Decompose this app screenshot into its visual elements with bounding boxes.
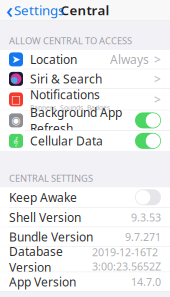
staticText: CENTRAL SETTINGS [9, 172, 93, 184]
staticText: Notifications [30, 87, 100, 103]
staticText: Settings [14, 1, 64, 19]
button[interactable]: ◉ [0, 110, 170, 130]
staticText: ◉ [11, 114, 20, 126]
staticText: > [154, 51, 161, 67]
staticText: > [154, 91, 161, 107]
button[interactable]: ➤ [0, 50, 170, 69]
staticText: 9.3.53 [131, 210, 161, 224]
staticText: Cellular Data [30, 133, 103, 149]
staticText: 𝄞 [13, 135, 18, 147]
staticText: Siri & Search [30, 71, 102, 87]
staticText: Banners, Sounds, Badges [30, 103, 110, 112]
staticText: 14.7.0 [131, 275, 161, 289]
staticText: ‹ [6, 0, 13, 24]
button[interactable]: 𝄞 [0, 131, 170, 151]
staticText: Central [60, 1, 109, 19]
staticText: App Version [9, 274, 76, 290]
button[interactable]: Siri & Search [0, 69, 170, 88]
button[interactable]: Keep Awake [0, 187, 170, 207]
staticText: 9.7.271 [125, 230, 161, 244]
staticText: Always [110, 51, 149, 67]
staticText: 2019-12-16T23:00:23.5652Z [92, 245, 161, 273]
staticText: Location [30, 51, 77, 67]
staticText: > [154, 71, 161, 87]
button[interactable]: □ [0, 89, 170, 110]
staticText: Keep Awake [9, 189, 77, 205]
staticText: Background App Refresh [30, 104, 122, 136]
button[interactable]: ‹ [0, 0, 64, 26]
staticText: ALLOW CENTRAL TO ACCESS [9, 34, 132, 47]
staticText: Database Version [9, 243, 63, 275]
staticText: Bundle Version [9, 229, 93, 245]
staticText: Shell Version [9, 209, 81, 225]
staticText: ➤ [11, 53, 20, 65]
staticText: □ [11, 93, 21, 105]
